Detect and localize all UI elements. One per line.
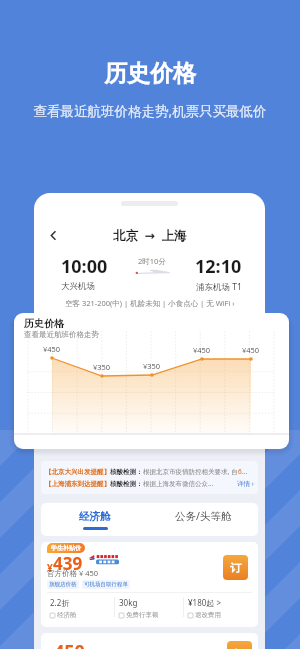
staticText: 旗舰店价格 — [49, 581, 77, 588]
staticText: 退改费用 — [195, 611, 221, 619]
staticText: 经济舱 — [79, 510, 111, 523]
staticText: 查看最近航班价格走势 — [24, 330, 99, 339]
staticText: 历史价格 — [0, 59, 300, 88]
button[interactable]: 学生补贴价 — [41, 542, 258, 627]
staticText: 公务/头等舱 — [175, 509, 232, 523]
staticText: 经济舱 — [57, 611, 77, 619]
staticText: 查看最近航班价格走势,机票只买最低价 — [0, 102, 300, 120]
staticText: ¥350 — [93, 362, 111, 372]
staticText: 订 — [234, 647, 245, 649]
staticText: 可机场自取行程单 — [84, 581, 128, 588]
staticText: ¥450 — [43, 344, 61, 354]
staticText: 核酸检测： — [110, 480, 143, 488]
button[interactable]: 订 — [223, 555, 248, 580]
button[interactable]: ¥ — [41, 633, 258, 649]
button[interactable]: 订 — [227, 641, 252, 649]
staticText: ¥180起 > — [188, 597, 221, 608]
staticText: 订 — [230, 561, 241, 575]
staticText: 439 — [53, 552, 83, 575]
staticText: ¥ — [47, 561, 53, 575]
staticText: ... — [242, 467, 248, 476]
staticText: 免费行李额 — [126, 611, 159, 619]
button[interactable]: 空客 321-200(中) | 机龄未知 | 小食点心 | 无 WiFi › — [34, 298, 265, 308]
staticText: 6 — [238, 467, 242, 476]
staticText: 根据上海发布微信公众... — [143, 479, 214, 488]
staticText: 官方价格 ¥ 450 — [47, 568, 99, 578]
button[interactable]: 经济舱 — [41, 503, 149, 536]
staticText: ¥350 — [143, 361, 161, 371]
staticText: 2时10分 — [138, 256, 166, 266]
staticText: 10:00 — [61, 254, 108, 279]
staticText: 30kg — [119, 597, 138, 608]
button[interactable]: Back — [40, 222, 66, 248]
staticText: ¥450 — [193, 345, 211, 355]
staticText: 12:10 — [195, 254, 242, 279]
staticText: ¥450 — [242, 345, 260, 355]
staticText: 历史价格 — [24, 317, 64, 330]
staticText: 详情 › — [237, 479, 254, 488]
staticText: 北京 → 上海 — [113, 227, 187, 244]
staticText: 2.2折 — [50, 597, 70, 608]
button[interactable]: 公务/头等舱 — [149, 503, 258, 536]
staticText: 核酸检测： — [110, 468, 143, 476]
staticText: 学生补贴价 — [51, 544, 81, 552]
button[interactable]: 【北京大兴出发提醒】 — [41, 461, 258, 494]
staticText: 大兴机场 — [61, 281, 95, 292]
staticText: 【北京大兴出发提醒】 — [45, 468, 110, 476]
staticText: 450 — [54, 639, 85, 649]
staticText: 浦东机场 T1 — [196, 281, 242, 293]
staticText: 空客 321-200(中) | 机龄未知 | 小食点心 | 无 WiFi › — [65, 298, 235, 308]
staticText: 根据北京市疫情防控相关要求, 自 — [143, 467, 238, 476]
staticText: 【上海浦东到达提醒】 — [45, 480, 110, 488]
